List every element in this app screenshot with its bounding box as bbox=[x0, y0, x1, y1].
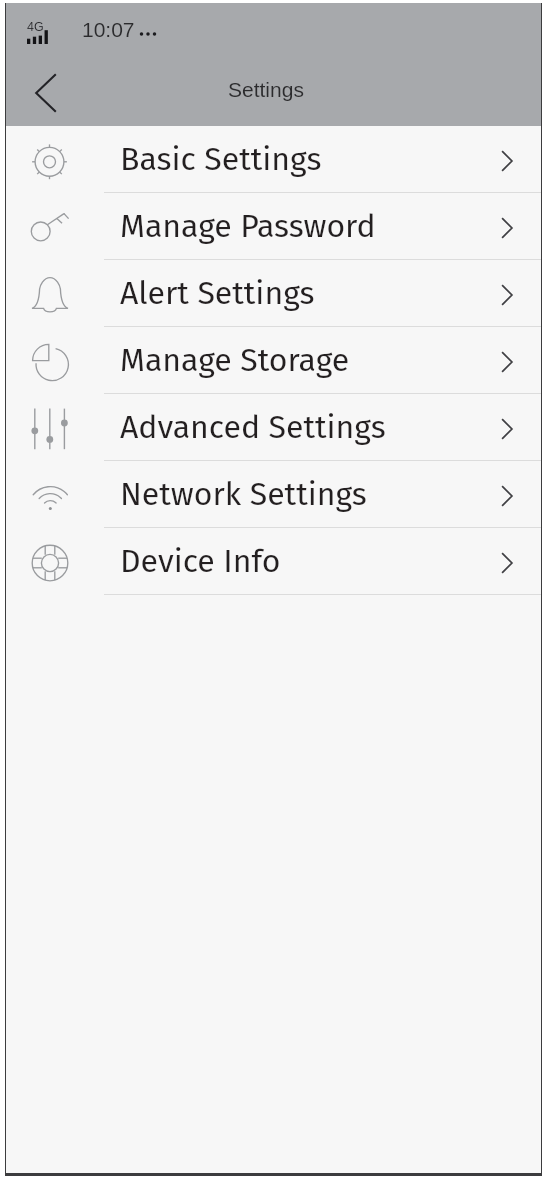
button[interactable]: Manage Storage bbox=[6, 327, 541, 394]
staticText: 10:07 bbox=[82, 18, 135, 41]
staticText: Settings bbox=[228, 78, 304, 101]
button[interactable]: Back bbox=[23, 67, 69, 119]
staticText: 4G bbox=[27, 20, 44, 34]
staticText: Basic Settings bbox=[120, 140, 322, 178]
staticText: Advanced Settings bbox=[120, 408, 386, 446]
button[interactable]: Device Info bbox=[6, 528, 541, 595]
button[interactable]: Network Settings bbox=[6, 461, 541, 528]
staticText: Manage Storage bbox=[120, 341, 350, 379]
staticText: Network Settings bbox=[120, 475, 367, 513]
staticText: Device Info bbox=[120, 542, 281, 580]
staticText: Alert Settings bbox=[120, 274, 315, 312]
button[interactable]: Advanced Settings bbox=[6, 394, 541, 461]
button[interactable]: Manage Password bbox=[6, 193, 541, 260]
button[interactable]: Basic Settings bbox=[6, 126, 541, 193]
button[interactable]: Alert Settings bbox=[6, 260, 541, 327]
staticText: Manage Password bbox=[120, 207, 376, 245]
